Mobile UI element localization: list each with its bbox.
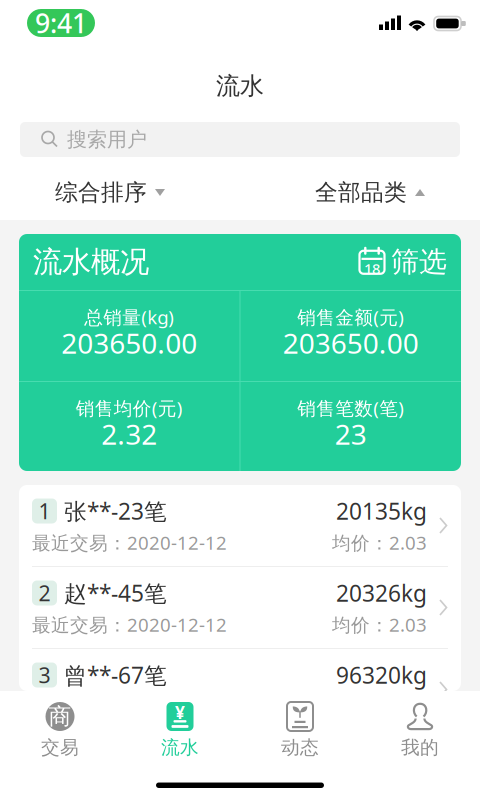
staticText: 96320kg [336,660,427,690]
staticText: 交易 [41,736,79,759]
staticText: 搜索用户 [67,127,147,152]
staticText: 综合排序 [55,179,147,206]
staticText: 张**-23笔 [64,496,167,526]
button[interactable]: 2 [19,567,461,648]
staticText: 赵**-45笔 [64,578,167,608]
button[interactable]: ¥ [120,702,240,759]
staticText: 均价：2.03 [332,612,427,637]
staticText: 销售均价(元) [76,396,183,420]
staticText: 销售笔数(笔) [297,396,404,420]
button[interactable]: 综合排序 [55,179,165,206]
staticText: 18 [364,259,380,278]
staticText: ¥ [175,701,185,724]
staticText: 流水概况 [33,244,149,280]
staticText: 商 [48,703,71,730]
staticText: 2 [38,579,50,607]
staticText: 流水 [216,71,264,101]
staticText: 203650.00 [283,324,419,362]
staticText: 1 [38,497,50,525]
button[interactable]: 我的 [360,702,480,759]
button[interactable]: 3 [19,649,461,730]
staticText: 最近交易：2020-12-12 [32,612,227,637]
staticText: 2.32 [101,415,157,453]
button[interactable]: 搜索用户 [20,122,460,157]
staticText: 最近交易：2020-12-12 [32,530,227,555]
staticText: 均价：2.03 [332,694,427,719]
staticText: 动态 [281,736,319,759]
button[interactable]: 商 [0,702,120,759]
button[interactable]: 动态 [240,702,360,759]
button[interactable]: 全部品类 [315,179,425,206]
staticText: 3 [38,661,50,689]
staticText: 9:41 [35,5,87,41]
staticText: 总销量(kg) [84,305,174,329]
staticText: 23 [335,415,367,453]
staticText: 20135kg [336,496,427,526]
staticText: 均价：2.03 [332,530,427,555]
staticText: 203650.00 [61,324,197,362]
button[interactable]: 18 [358,245,447,279]
staticText: 流水 [161,736,199,759]
staticText: 筛选 [391,245,447,279]
staticText: 我的 [401,736,439,759]
staticText: 全部品类 [315,179,407,206]
staticText: 20326kg [336,578,427,608]
staticText: 曾**-67笔 [64,660,167,690]
staticText: 最近交易：2020-12-12 [32,694,227,719]
staticText: 销售金额(元) [297,305,404,329]
button[interactable]: 1 [19,485,461,566]
